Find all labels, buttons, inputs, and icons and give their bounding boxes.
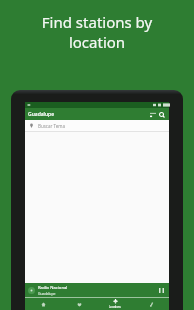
staticText: Find stations by location bbox=[14, 12, 180, 52]
staticText: Guadalupe bbox=[38, 291, 56, 296]
staticText: Radio Nacional bbox=[38, 285, 68, 291]
button[interactable]: Favorites bbox=[61, 298, 97, 310]
staticText: Buscar Tema bbox=[38, 123, 66, 129]
button[interactable]: Cast bbox=[148, 110, 157, 119]
button[interactable]: Pause bbox=[156, 285, 166, 295]
staticText: Guadalupe bbox=[28, 111, 55, 118]
button[interactable]: Search bbox=[157, 110, 166, 119]
button[interactable]: Locations bbox=[97, 298, 133, 310]
button[interactable]: Radio Nacional bbox=[25, 283, 169, 297]
staticText: Locations bbox=[109, 305, 121, 309]
button[interactable]: Home bbox=[25, 298, 61, 310]
button[interactable]: Buscar Tema bbox=[25, 120, 169, 131]
button[interactable]: Genres bbox=[133, 298, 169, 310]
